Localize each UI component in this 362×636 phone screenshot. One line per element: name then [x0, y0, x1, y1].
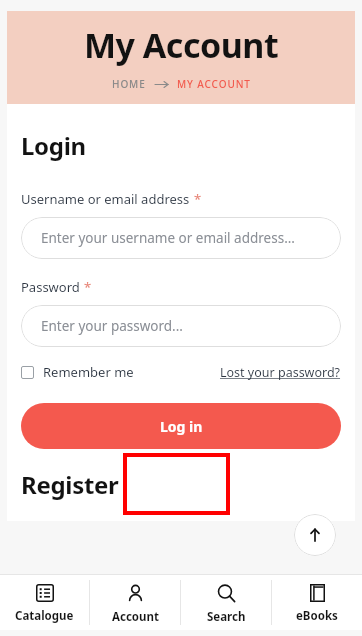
staticText: My Account: [84, 22, 279, 68]
staticText: Enter your password...: [41, 317, 183, 335]
button[interactable]: Catalogue: [0, 575, 89, 630]
staticText: Search: [207, 609, 246, 625]
staticText: Password: [21, 278, 80, 296]
staticText: eBooks: [296, 608, 338, 624]
button[interactable]: HOME: [112, 77, 146, 91]
button[interactable]: Scroll to top: [294, 514, 336, 556]
button[interactable]: Remember me: [21, 363, 134, 381]
button[interactable]: Account: [90, 575, 180, 630]
staticText: Account: [112, 609, 159, 625]
staticText: HOME: [112, 77, 146, 91]
staticText: Log in: [160, 417, 203, 436]
staticText: Login: [21, 129, 86, 162]
staticText: MY ACCOUNT: [177, 77, 251, 91]
button[interactable]: Enter your password...: [21, 305, 341, 347]
staticText: Register: [21, 468, 119, 501]
button[interactable]: Enter your username or email address...: [21, 217, 341, 259]
staticText: Username or email address: [21, 190, 190, 208]
staticText: Catalogue: [15, 608, 74, 624]
staticText: Enter your username or email address...: [41, 229, 295, 247]
staticText: *: [84, 278, 92, 296]
button[interactable]: Lost your password?: [220, 364, 341, 381]
staticText: Lost your password?: [220, 364, 341, 381]
button[interactable]: Log in: [21, 403, 341, 449]
staticText: *: [194, 190, 202, 208]
button[interactable]: Search: [181, 575, 271, 630]
staticText: Remember me: [43, 363, 134, 381]
button[interactable]: eBooks: [272, 575, 362, 630]
